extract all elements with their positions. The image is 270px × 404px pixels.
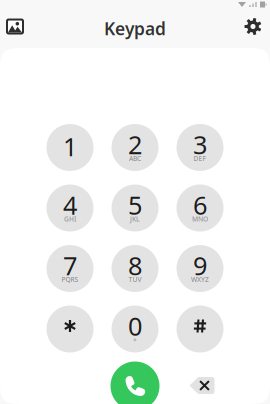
staticText: DEF [193, 154, 206, 163]
button[interactable]: 3 [176, 124, 223, 171]
button[interactable]: 5 [111, 184, 158, 231]
staticText: MNO [192, 215, 208, 223]
staticText: 6 [193, 188, 207, 222]
button[interactable]: 6 [176, 184, 223, 231]
button[interactable]: 2 [111, 124, 158, 171]
button[interactable]: Call [110, 361, 159, 404]
button[interactable]: 8 [111, 245, 158, 292]
button[interactable]: Settings [237, 9, 269, 43]
staticText: JKL [130, 215, 140, 223]
staticText: PQRS [61, 275, 78, 284]
staticText: 5 [128, 188, 142, 222]
button[interactable] [176, 305, 223, 352]
button[interactable]: Photo [0, 9, 31, 43]
staticText: 3 [193, 128, 207, 161]
staticText: Keypad [104, 17, 166, 40]
staticText: 8 [128, 249, 142, 282]
button[interactable]: 7 [46, 245, 93, 292]
staticText: 9 [193, 249, 207, 282]
staticText: 0 [128, 309, 142, 343]
staticText: + [133, 336, 137, 344]
staticText: 2 [128, 128, 142, 161]
staticText: 1 [63, 130, 77, 163]
staticText: GHI [64, 215, 76, 223]
button[interactable]: 0 [111, 305, 158, 352]
staticText: 7 [63, 249, 77, 282]
button[interactable]: 9 [176, 245, 223, 292]
staticText: 4 [63, 188, 77, 222]
button[interactable]: 4 [46, 184, 93, 231]
button[interactable] [46, 305, 93, 352]
button[interactable]: 1 [46, 124, 93, 171]
staticText: ABC [129, 154, 141, 163]
staticText: WXYZ [191, 275, 209, 284]
button[interactable]: Delete [182, 368, 222, 402]
staticText: TUV [128, 275, 141, 284]
